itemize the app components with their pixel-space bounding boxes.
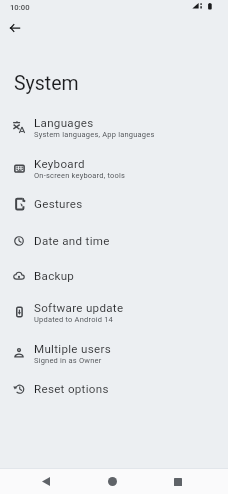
staticText: System [14,72,79,95]
button[interactable]: Reset options [0,371,228,407]
staticText: Signed in as Owner [34,356,102,365]
staticText: Software update [34,301,124,315]
button[interactable]: Date and time [0,223,228,259]
button[interactable]: Software update [0,291,228,333]
staticText: Backup [34,269,75,283]
staticText: Multiple users [34,342,111,356]
button[interactable]: Home [99,469,125,494]
staticText: Date and time [34,234,110,248]
staticText: Gestures [34,197,83,211]
button[interactable]: Languages [0,106,228,148]
staticText: Updated to Android 14 [34,315,113,324]
button[interactable]: Recents [165,469,191,494]
button[interactable]: Gestures [0,186,228,222]
staticText: 10:00 [10,3,30,12]
button[interactable]: Back [33,469,59,494]
button[interactable]: Keyboard [0,147,228,189]
button[interactable]: Back [3,16,27,40]
staticText: System languages, App languages [34,130,155,139]
staticText: Reset options [34,382,109,396]
button[interactable]: Multiple users [0,332,228,374]
staticText: Keyboard [34,157,85,171]
button[interactable]: Backup [0,258,228,294]
staticText: On-screen keyboard, tools [34,171,126,180]
staticText: Languages [34,116,94,130]
